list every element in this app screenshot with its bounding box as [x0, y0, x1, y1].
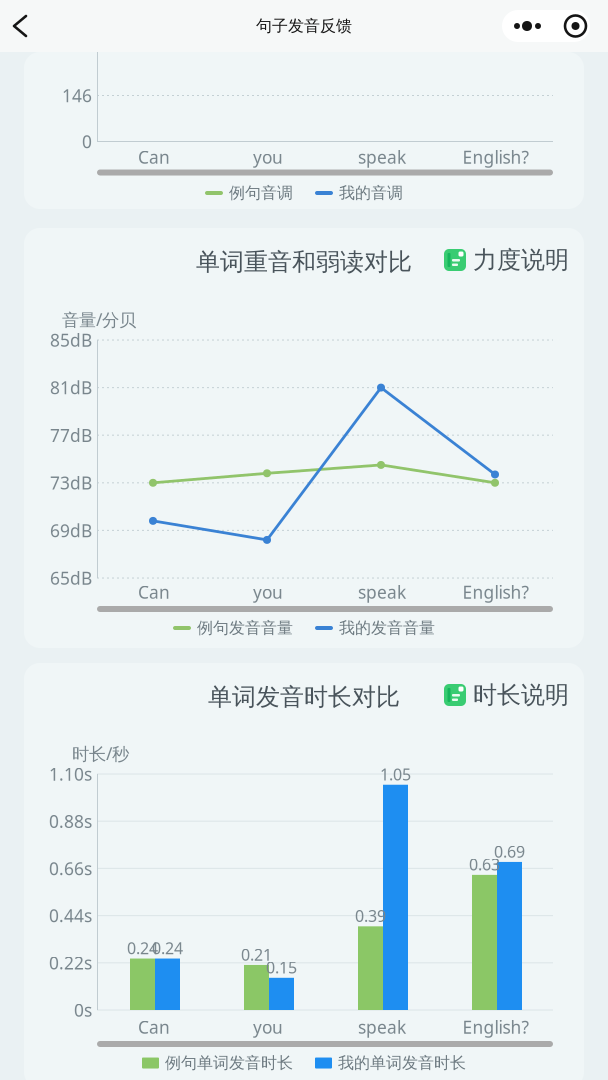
staticText: 0s: [74, 998, 92, 1021]
staticText: 0.39: [355, 905, 386, 926]
staticText: you: [253, 145, 283, 168]
button[interactable]: 力度说明: [444, 245, 576, 275]
staticText: 77dB: [50, 424, 92, 447]
staticText: 0.22s: [49, 951, 92, 974]
staticText: 0.88s: [49, 810, 92, 833]
staticText: 0.21: [241, 944, 272, 965]
staticText: 0.24: [127, 937, 158, 959]
staticText: you: [253, 1015, 283, 1038]
staticText: 65dB: [50, 566, 92, 589]
staticText: 1.05: [380, 764, 411, 785]
staticText: English?: [462, 145, 529, 168]
staticText: 81dB: [50, 376, 92, 399]
staticText: 0: [82, 130, 92, 153]
staticText: 0.24: [152, 937, 183, 959]
staticText: 85dB: [50, 328, 92, 351]
staticText: English?: [462, 580, 529, 603]
staticText: 例句发音音量: [197, 618, 293, 638]
staticText: 1.10s: [49, 762, 92, 785]
staticText: speak: [358, 1015, 406, 1038]
staticText: 例句单词发音时长: [165, 1053, 293, 1073]
staticText: 73dB: [50, 471, 92, 494]
staticText: English?: [462, 1015, 529, 1038]
button[interactable]: 时长说明: [444, 680, 576, 710]
staticText: 时长说明: [473, 680, 569, 710]
staticText: 0.15: [266, 957, 297, 978]
staticText: 0.63: [469, 854, 500, 875]
staticText: 时长/秒: [72, 742, 129, 765]
staticText: 146: [62, 84, 92, 107]
staticText: 句子发音反馈: [256, 16, 352, 36]
staticText: Can: [138, 1015, 170, 1038]
staticText: 0.66s: [49, 857, 92, 880]
staticText: Can: [138, 145, 170, 168]
staticText: 69dB: [50, 519, 92, 542]
staticText: you: [253, 580, 283, 603]
staticText: 单词重音和弱读对比: [196, 247, 412, 277]
staticText: speak: [358, 580, 406, 603]
staticText: 我的发音音量: [339, 618, 435, 638]
button[interactable]: Back: [0, 0, 48, 52]
staticText: 0.69: [494, 841, 525, 862]
staticText: Can: [138, 580, 170, 603]
staticText: 我的音调: [339, 183, 403, 203]
staticText: 单词发音时长对比: [208, 682, 400, 712]
button[interactable]: More: [502, 10, 590, 42]
staticText: 例句音调: [229, 183, 293, 203]
staticText: 0.44s: [49, 904, 92, 927]
staticText: 我的单词发音时长: [338, 1053, 466, 1073]
staticText: 音量/分贝: [62, 308, 136, 331]
staticText: speak: [358, 145, 406, 168]
staticText: 力度说明: [473, 245, 569, 275]
